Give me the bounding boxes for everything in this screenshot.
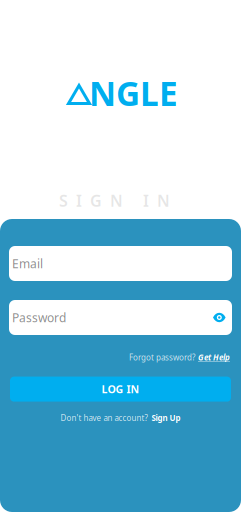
button[interactable]: Password <box>9 300 232 335</box>
button[interactable]: Sign Up <box>151 413 180 423</box>
staticText: Sign Up <box>151 413 180 423</box>
button[interactable]: Email <box>9 246 232 281</box>
staticText: S I G N I N <box>59 190 170 211</box>
button[interactable]: Get Help <box>198 352 230 363</box>
staticText: Don't have an account? <box>60 413 147 423</box>
staticText: Email <box>12 255 43 271</box>
button[interactable]: LOG IN <box>10 377 231 402</box>
staticText: Password <box>12 309 66 325</box>
staticText: LOG IN <box>101 382 139 396</box>
staticText: NGLE <box>89 71 178 115</box>
staticText: Forgot password? <box>129 352 195 363</box>
staticText: Get Help <box>198 352 230 363</box>
